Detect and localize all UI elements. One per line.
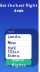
- staticText: Search flights: [11, 57, 25, 68]
- staticText: New York: [7, 40, 15, 51]
- staticText: deals: [13, 8, 23, 13]
- staticText: Economy: [7, 53, 19, 63]
- staticText: From: [7, 30, 13, 34]
- staticText: Get the best flight: [0, 3, 37, 8]
- staticText: To: [7, 36, 10, 40]
- staticText: Depart: [7, 46, 16, 49]
- staticText: 12 Jun: [7, 49, 19, 54]
- staticText: London: [7, 34, 20, 44]
- button[interactable]: Search flights: [5, 59, 31, 65]
- staticText: Class: [7, 49, 13, 53]
